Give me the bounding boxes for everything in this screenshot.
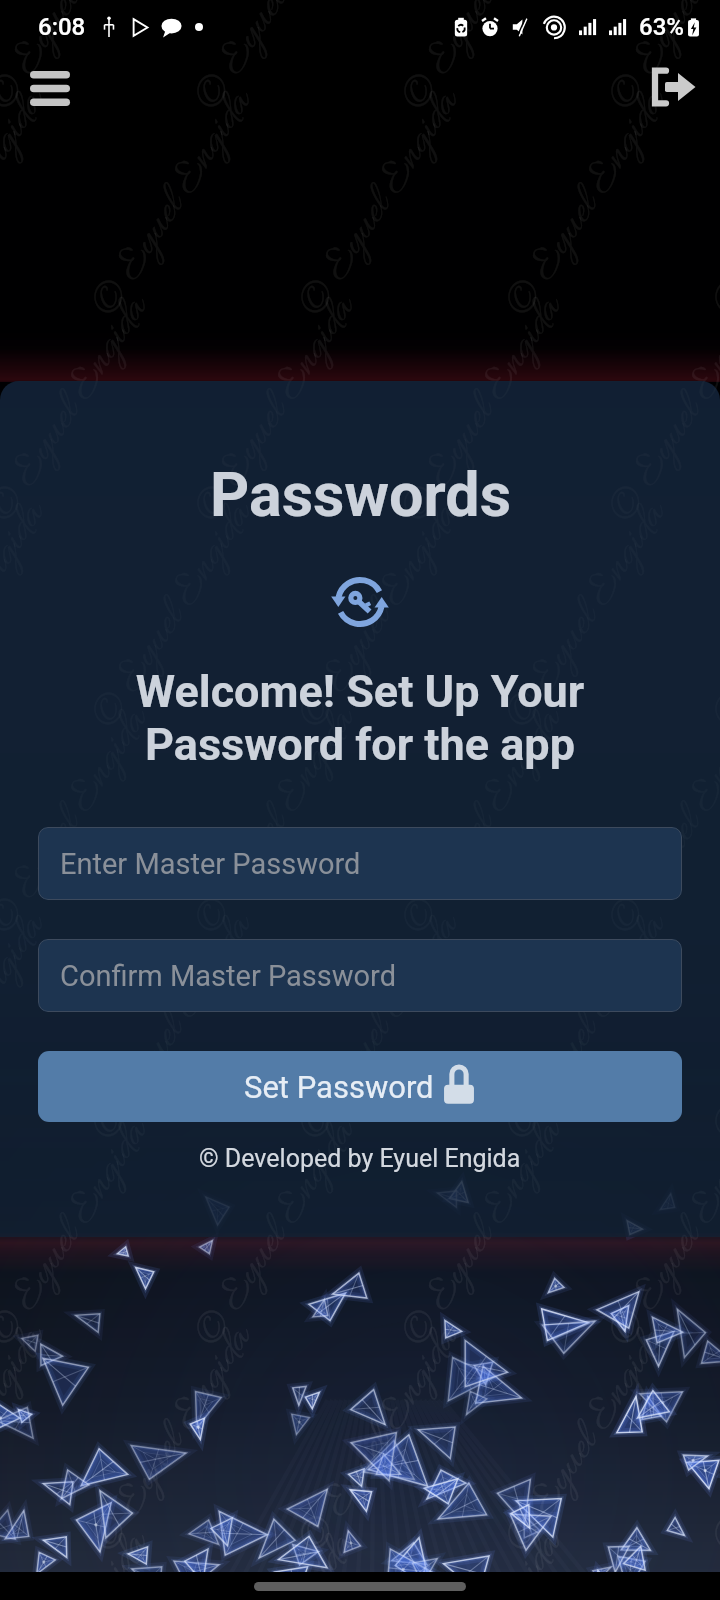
staticText: © Eyuel Engida: [597, 697, 720, 945]
staticText: © Eyuel Engida: [0, 1109, 164, 1357]
staticText: © Eyuel Engida: [287, 1315, 475, 1563]
staticText: © Developed by Eyuel Engida: [199, 1144, 521, 1173]
staticText: © Eyuel Engida: [390, 381, 578, 533]
staticText: © Eyuel Engida: [287, 491, 475, 739]
staticText: © Eyuel Engida: [80, 903, 268, 1151]
staticText: Welcome! Set Up Your Password for the ap…: [0, 665, 720, 771]
staticText: © Eyuel Engida: [80, 79, 268, 327]
staticText: © Eyuel Engida: [494, 79, 682, 327]
button[interactable]: Menu: [21, 59, 79, 117]
staticText: © Eyuel Engida: [0, 1109, 164, 1237]
button[interactable]: Confirm Master Password: [38, 939, 682, 1012]
staticText: © Eyuel Engida: [183, 697, 371, 945]
staticText: © Eyuel Engida: [287, 491, 475, 739]
staticText: 63%: [639, 13, 684, 41]
staticText: © Eyuel Engida: [597, 0, 720, 121]
staticText: © Eyuel Engida: [80, 491, 268, 739]
staticText: © Eyuel Engida: [390, 1521, 578, 1600]
staticText: © Eyuel Engida: [390, 697, 578, 945]
staticText: © Eyuel Engida: [390, 1109, 578, 1357]
staticText: © Eyuel Engida: [0, 697, 164, 945]
staticText: © Eyuel Engida: [80, 903, 268, 1151]
staticText: © Eyuel Engida: [390, 697, 578, 945]
staticText: © Eyuel Engida: [597, 1521, 720, 1600]
staticText: © Eyuel Engida: [0, 903, 61, 1151]
button[interactable]: Set Password: [38, 1051, 682, 1122]
staticText: © Eyuel Engida: [390, 1109, 578, 1237]
staticText: © Eyuel Engida: [0, 1521, 164, 1600]
staticText: © Eyuel Engida: [597, 697, 720, 945]
staticText: © Eyuel Engida: [494, 1315, 682, 1563]
staticText: Passwords: [210, 459, 511, 530]
staticText: © Eyuel Engida: [390, 285, 578, 533]
staticText: © Eyuel Engida: [390, 0, 578, 121]
button[interactable]: Enter Master Password: [38, 827, 682, 900]
staticText: © Eyuel Engida: [494, 903, 682, 1151]
staticText: © Eyuel Engida: [183, 285, 371, 533]
staticText: © Eyuel Engida: [80, 1315, 268, 1563]
button[interactable]: Logout: [640, 56, 702, 118]
staticText: © Eyuel Engida: [0, 0, 164, 121]
staticText: © Eyuel Engida: [597, 1109, 720, 1237]
staticText: Confirm Master Password: [60, 959, 396, 993]
staticText: © Eyuel Engida: [287, 79, 475, 327]
staticText: Set Password: [244, 1069, 442, 1105]
staticText: © Eyuel Engida: [597, 381, 720, 533]
staticText: © Eyuel Engida: [597, 285, 720, 533]
staticText: 6:08: [38, 13, 86, 41]
staticText: © Eyuel Engida: [80, 491, 268, 739]
staticText: © Eyuel Engida: [0, 1315, 61, 1563]
staticText: © Eyuel Engida: [0, 285, 164, 533]
staticText: © Eyuel Engida: [494, 903, 682, 1151]
staticText: © Eyuel Engida: [287, 903, 475, 1151]
staticText: © Eyuel Engida: [183, 381, 371, 533]
staticText: © Eyuel Engida: [287, 903, 475, 1151]
staticText: Enter Master Password: [60, 847, 361, 881]
staticText: © Eyuel Engida: [0, 903, 61, 1151]
staticText: © Eyuel Engida: [183, 1109, 371, 1357]
staticText: © Eyuel Engida: [0, 697, 164, 945]
staticText: © Eyuel Engida: [183, 1109, 371, 1237]
staticText: © Eyuel Engida: [183, 697, 371, 945]
staticText: © Eyuel Engida: [701, 1315, 720, 1563]
staticText: © Eyuel Engida: [494, 491, 682, 739]
staticText: © Eyuel Engida: [183, 1521, 371, 1600]
staticText: © Eyuel Engida: [494, 491, 682, 739]
staticText: © Eyuel Engida: [0, 79, 61, 327]
staticText: © Eyuel Engida: [597, 1109, 720, 1357]
staticText: © Eyuel Engida: [183, 0, 371, 121]
